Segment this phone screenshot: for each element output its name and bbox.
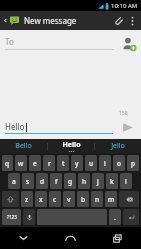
button[interactable]: Add contact	[118, 33, 138, 53]
button[interactable]: c	[49, 191, 61, 207]
button[interactable]: b	[77, 191, 89, 207]
staticText: Hello	[62, 140, 81, 150]
button[interactable]: n	[91, 191, 103, 207]
staticText: ?123	[7, 214, 17, 220]
staticText: 158	[119, 110, 128, 117]
button[interactable]: i	[99, 155, 111, 171]
staticText: w	[18, 159, 24, 168]
staticText: h	[82, 177, 87, 186]
button[interactable]: Back	[2, 13, 21, 28]
button[interactable]: m	[105, 191, 117, 207]
button[interactable]: Bello	[0, 139, 47, 153]
staticText: j	[97, 177, 99, 186]
staticText: k	[110, 177, 114, 186]
button[interactable]: g	[64, 173, 76, 189]
staticText: e	[33, 159, 37, 168]
staticText: y	[75, 159, 79, 168]
staticText: c	[53, 195, 57, 204]
button[interactable]: u	[85, 155, 97, 171]
staticText: p	[131, 159, 136, 168]
button[interactable]: Recent apps	[94, 227, 141, 249]
button[interactable]: q	[2, 155, 13, 171]
button[interactable]: Shift	[2, 191, 19, 207]
staticText: f	[55, 177, 58, 186]
button[interactable]: p	[127, 155, 139, 171]
button[interactable]: e	[29, 155, 41, 171]
button[interactable]: Enter	[123, 209, 139, 225]
staticText: u	[89, 159, 94, 168]
button[interactable]: Hide keyboard	[0, 227, 47, 249]
button[interactable]: Attach	[110, 11, 126, 30]
button[interactable]: Hello	[48, 139, 94, 153]
staticText: v	[67, 195, 71, 204]
button[interactable]: y	[71, 155, 83, 171]
button[interactable]: j	[92, 173, 104, 189]
staticText: a	[12, 177, 16, 186]
button[interactable]: l	[120, 173, 132, 189]
staticText: n	[95, 195, 100, 204]
staticText: b	[81, 195, 86, 204]
staticText: g	[68, 177, 73, 186]
button[interactable]: Hello	[5, 121, 113, 134]
button[interactable]: w	[15, 155, 27, 171]
button[interactable]: a	[8, 173, 20, 189]
button[interactable]: More options	[126, 11, 139, 30]
button[interactable]: o	[113, 155, 125, 171]
button[interactable]: h	[78, 173, 90, 189]
staticText: t	[62, 159, 65, 168]
staticText: d	[40, 177, 45, 186]
button[interactable]: .	[109, 209, 121, 225]
staticText: Hello	[5, 121, 25, 132]
staticText: 10:10 AM	[111, 2, 138, 10]
button[interactable]: s	[22, 173, 34, 189]
button[interactable]: d	[36, 173, 48, 189]
staticText: r	[48, 159, 51, 168]
staticText: New message	[24, 15, 77, 26]
button[interactable]: r	[43, 155, 55, 171]
button[interactable]: z	[21, 191, 33, 207]
staticText: .	[114, 213, 116, 222]
staticText: i	[104, 159, 106, 168]
button[interactable]: t	[57, 155, 69, 171]
button[interactable]: To	[5, 36, 114, 50]
button[interactable]: v	[63, 191, 75, 207]
button[interactable]: k	[106, 173, 118, 189]
button[interactable]: Home	[47, 227, 94, 249]
staticText: x	[39, 195, 43, 204]
button[interactable]: x	[35, 191, 47, 207]
staticText: To	[5, 36, 14, 47]
button[interactable]: Voice input	[23, 209, 35, 225]
staticText: z	[25, 195, 29, 204]
staticText: Jello	[111, 141, 125, 151]
staticText: o	[117, 159, 121, 168]
button[interactable]: ?123	[2, 209, 21, 225]
staticText: Bello	[15, 141, 32, 151]
button[interactable]: f	[50, 173, 62, 189]
staticText: s	[26, 177, 30, 186]
button[interactable]: Jello	[95, 139, 141, 153]
button[interactable]: Delete	[119, 191, 139, 207]
staticText: m	[108, 195, 115, 204]
staticText: q	[5, 159, 10, 168]
button[interactable]: Send	[118, 118, 138, 136]
staticText: l	[125, 177, 127, 186]
